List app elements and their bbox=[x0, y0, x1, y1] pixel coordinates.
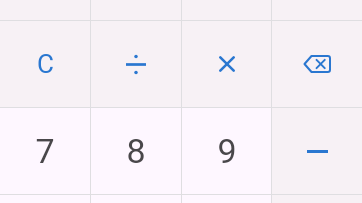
button[interactable]: 8 bbox=[91, 108, 181, 194]
button[interactable]: Minus bbox=[272, 108, 362, 194]
staticText: 7 bbox=[35, 131, 55, 171]
button[interactable]: Multiply bbox=[182, 21, 271, 107]
staticText: 8 bbox=[126, 131, 146, 171]
staticText: C bbox=[37, 49, 54, 79]
button[interactable]: 7 bbox=[0, 108, 90, 194]
button[interactable]: Backspace bbox=[272, 21, 362, 107]
button[interactable]: Divide bbox=[91, 21, 181, 107]
button[interactable]: Clear bbox=[0, 21, 90, 107]
button[interactable]: 9 bbox=[182, 108, 271, 194]
staticText: 9 bbox=[217, 131, 237, 171]
